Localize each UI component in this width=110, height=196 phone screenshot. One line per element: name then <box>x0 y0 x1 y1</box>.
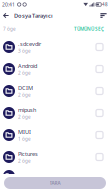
button[interactable]: TÜMÜNÜ SEÇ <box>74 26 110 32</box>
staticText: Android <box>18 62 37 70</box>
button[interactable]: Android <box>0 58 110 80</box>
staticText: 2 öge <box>18 92 31 98</box>
staticText: 1 öge <box>18 136 31 142</box>
staticText: Pictures <box>18 150 38 158</box>
button[interactable]: Back <box>0 9 12 22</box>
staticText: 2 öge <box>18 114 31 120</box>
staticText: 20:41 <box>2 1 15 8</box>
staticText: .sdcevdir <box>18 40 41 48</box>
staticText: mipush <box>18 106 36 114</box>
button[interactable]: DCIM <box>0 80 110 102</box>
button[interactable]: mipush <box>0 102 110 124</box>
button[interactable]: Sort <box>97 9 110 22</box>
staticText: 2 öge <box>18 158 31 164</box>
button[interactable]: Pictures <box>0 146 110 168</box>
staticText: MIUI <box>18 128 31 136</box>
staticText: TARA <box>49 180 60 186</box>
staticText: 2 öge <box>18 70 31 76</box>
button[interactable]: TARA <box>4 177 106 189</box>
staticText: 3 öge <box>18 48 31 54</box>
staticText: TÜMÜNÜ SEÇ <box>74 26 104 32</box>
button[interactable]: .sdcevdir <box>0 36 110 58</box>
staticText: Dosya Tarayıcı <box>14 12 53 19</box>
staticText: 7 öge <box>3 26 16 32</box>
staticText: DCIM <box>18 84 33 92</box>
staticText: 48 <box>102 1 108 8</box>
button[interactable]: MIUI <box>0 124 110 146</box>
